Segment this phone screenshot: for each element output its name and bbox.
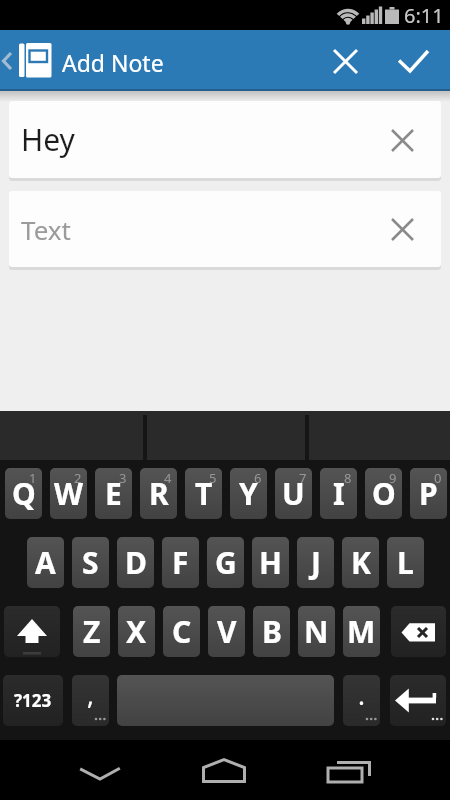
staticText: , (87, 677, 94, 712)
button[interactable]: I (320, 468, 357, 519)
button[interactable] (390, 675, 446, 726)
staticText: O (372, 473, 396, 514)
button[interactable]: Q (5, 468, 42, 519)
staticText: Hey (21, 119, 75, 160)
staticText: 6:11 (404, 2, 444, 29)
button[interactable] (117, 675, 334, 726)
button[interactable] (320, 36, 370, 86)
button[interactable]: P (410, 468, 447, 519)
button[interactable] (4, 606, 60, 657)
button[interactable] (385, 201, 441, 257)
staticText: W (54, 473, 84, 514)
staticText: 1 (29, 469, 37, 487)
button[interactable]: B (253, 606, 290, 657)
button[interactable] (385, 112, 441, 168)
button[interactable]: R (140, 468, 177, 519)
staticText: Y (239, 473, 258, 514)
staticText: N (304, 611, 329, 652)
staticText: Z (83, 611, 101, 652)
staticText: D (125, 542, 147, 583)
staticText: ?123 (14, 689, 52, 712)
button[interactable] (388, 36, 438, 86)
button[interactable]: O (365, 468, 402, 519)
staticText: E (105, 473, 122, 514)
staticText: H (259, 542, 282, 583)
staticText: J (311, 542, 321, 583)
staticText: P (419, 473, 438, 514)
staticText: V (217, 611, 237, 652)
staticText: 9 (389, 469, 397, 487)
button[interactable]: Y (230, 468, 267, 519)
staticText: A (35, 542, 56, 583)
staticText: 8 (344, 469, 352, 487)
staticText: B (262, 611, 282, 652)
staticText: S (82, 542, 99, 583)
button[interactable]: W (50, 468, 87, 519)
staticText: K (351, 542, 371, 583)
button[interactable]: Hey (9, 101, 441, 178)
button[interactable]: X (118, 606, 155, 657)
button[interactable]: ?123 (3, 675, 63, 726)
button[interactable]: F (162, 537, 199, 588)
button[interactable]: . (343, 675, 380, 726)
staticText: Text (21, 212, 71, 247)
staticText: 4 (164, 469, 172, 487)
staticText: 7 (299, 469, 307, 487)
button[interactable]: H (252, 537, 289, 588)
button[interactable]: E (95, 468, 132, 519)
button[interactable]: M (343, 606, 380, 657)
staticText: F (172, 542, 189, 583)
button[interactable]: Z (73, 606, 110, 657)
button[interactable] (0, 30, 58, 91)
button[interactable]: V (208, 606, 245, 657)
staticText: 5 (209, 469, 217, 487)
button[interactable] (192, 749, 256, 791)
staticText: 0 (434, 469, 442, 487)
staticText: L (397, 542, 414, 583)
staticText: 3 (119, 469, 127, 487)
staticText: 6 (254, 469, 262, 487)
staticText: C (172, 611, 192, 652)
staticText: R (149, 473, 169, 514)
staticText: U (282, 473, 305, 514)
button[interactable] (68, 753, 132, 795)
button[interactable] (391, 606, 446, 657)
button[interactable]: J (297, 537, 334, 588)
staticText: . (358, 677, 365, 712)
button[interactable]: T (185, 468, 222, 519)
staticText: Q (12, 473, 36, 514)
button[interactable]: L (387, 537, 424, 588)
staticText: T (195, 473, 213, 514)
button[interactable]: N (298, 606, 335, 657)
button[interactable]: C (163, 606, 200, 657)
button[interactable]: S (72, 537, 109, 588)
staticText: I (333, 473, 345, 514)
button[interactable]: , (72, 675, 109, 726)
staticText: 2 (74, 469, 82, 487)
staticText: M (347, 611, 376, 652)
button[interactable]: Text (9, 191, 441, 267)
staticText: G (215, 542, 237, 583)
button[interactable] (316, 749, 380, 791)
button[interactable]: A (27, 537, 64, 588)
button[interactable]: U (275, 468, 312, 519)
staticText: Add Note (62, 47, 164, 78)
button[interactable]: K (342, 537, 379, 588)
button[interactable]: G (207, 537, 244, 588)
button[interactable]: D (117, 537, 154, 588)
staticText: X (126, 611, 147, 652)
